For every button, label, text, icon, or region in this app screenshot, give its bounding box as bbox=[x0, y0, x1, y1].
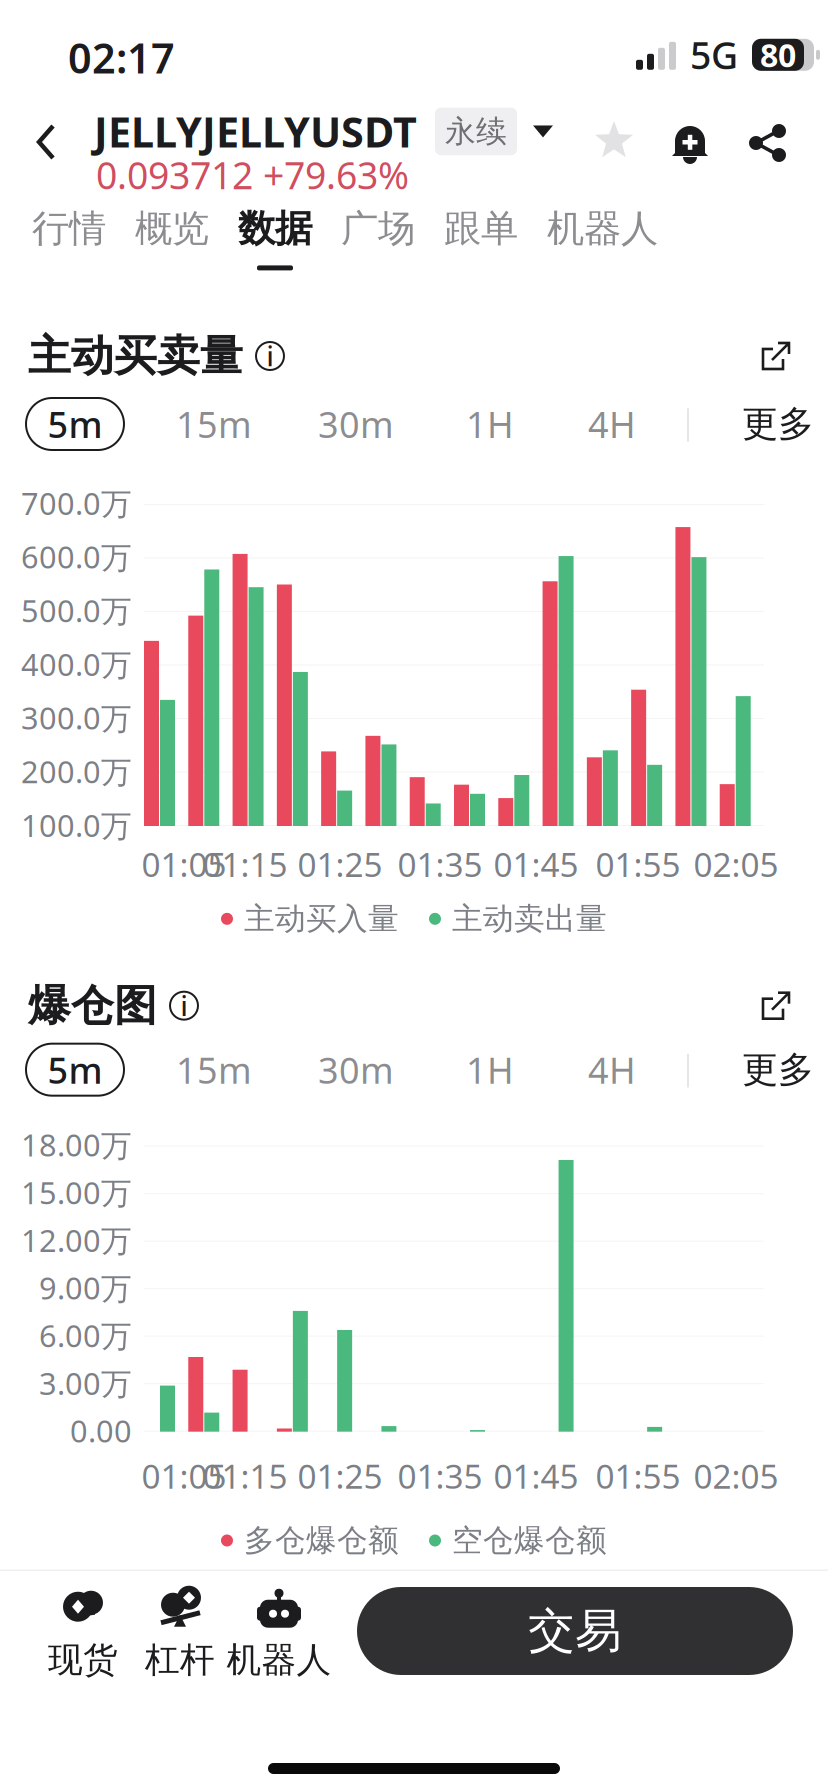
staticText: 1H bbox=[466, 400, 514, 448]
button[interactable]: 交易 bbox=[357, 1587, 793, 1675]
button[interactable]: 机器人 bbox=[547, 200, 658, 276]
staticText: 600.0万 bbox=[21, 536, 132, 577]
staticText: 02:05 bbox=[693, 842, 778, 886]
button[interactable]: 15m bbox=[176, 398, 252, 450]
staticText: 12.00万 bbox=[21, 1220, 132, 1260]
staticText: 02:05 bbox=[693, 1454, 778, 1498]
staticText: 更多 bbox=[742, 402, 814, 446]
staticText: 01:55 bbox=[595, 842, 680, 886]
staticText: 广场 bbox=[341, 206, 415, 251]
staticText: 01:45 bbox=[493, 842, 578, 886]
staticText: 1H bbox=[466, 1046, 514, 1094]
button[interactable]: 广场 bbox=[341, 200, 415, 276]
button[interactable]: Favorite bbox=[592, 120, 636, 164]
staticText: 500.0万 bbox=[21, 590, 132, 631]
staticText: 4H bbox=[588, 400, 636, 448]
button[interactable]: 更多 bbox=[742, 398, 814, 450]
button[interactable]: 1H bbox=[466, 398, 514, 450]
button[interactable]: 1H bbox=[466, 1044, 514, 1096]
staticText: 200.0万 bbox=[21, 751, 132, 792]
staticText: 交易 bbox=[528, 1602, 622, 1660]
staticText: 现货 bbox=[48, 1639, 118, 1681]
button[interactable]: 5m bbox=[26, 1044, 124, 1096]
staticText: 空仓爆仓额 bbox=[452, 1522, 607, 1559]
button[interactable]: 更多 bbox=[742, 1044, 814, 1096]
staticText: 15.00万 bbox=[21, 1172, 132, 1213]
button[interactable]: 行情 bbox=[32, 200, 106, 276]
button[interactable]: Price alert bbox=[668, 120, 714, 166]
button[interactable]: Expand chart bbox=[748, 332, 804, 380]
staticText: 机器人 bbox=[547, 206, 658, 251]
staticText: 30m bbox=[318, 400, 394, 448]
button[interactable]: 跟单 bbox=[444, 200, 518, 276]
staticText: 01:15 bbox=[202, 842, 287, 886]
staticText: 机器人 bbox=[226, 1639, 331, 1681]
staticText: 01:05 bbox=[141, 842, 226, 886]
staticText: 5m bbox=[47, 1046, 102, 1094]
staticText: 主动买卖量 bbox=[28, 330, 243, 382]
staticText: 02:17 bbox=[68, 30, 175, 85]
button[interactable]: 30m bbox=[318, 1044, 394, 1096]
staticText: 700.0万 bbox=[21, 483, 132, 523]
staticText: 数据 bbox=[238, 206, 312, 251]
staticText: 9.00万 bbox=[39, 1267, 132, 1308]
staticText: JELLYJELLYUSDT bbox=[94, 104, 417, 159]
button[interactable]: 概览 bbox=[135, 200, 209, 276]
button[interactable]: Share bbox=[744, 120, 790, 166]
staticText: 18.00万 bbox=[21, 1124, 132, 1165]
staticText: 行情 bbox=[32, 206, 106, 251]
staticText: 5G bbox=[690, 30, 738, 80]
staticText: 更多 bbox=[742, 1048, 814, 1092]
button[interactable]: 杠杆 bbox=[133, 1583, 227, 1683]
staticText: 0.093712 +79.63% bbox=[96, 150, 409, 200]
staticText: 01:25 bbox=[297, 842, 382, 886]
staticText: 01:25 bbox=[297, 1454, 382, 1498]
staticText: 6.00万 bbox=[39, 1315, 132, 1356]
button[interactable]: 现货 bbox=[36, 1583, 130, 1683]
button[interactable]: Back bbox=[16, 108, 78, 176]
button[interactable]: 5m bbox=[26, 398, 124, 450]
button[interactable]: 数据 bbox=[238, 200, 312, 276]
staticText: 0.00 bbox=[70, 1410, 132, 1451]
staticText: 15m bbox=[176, 400, 252, 448]
staticText: 主动买入量 bbox=[244, 900, 399, 938]
button[interactable]: 15m bbox=[176, 1044, 252, 1096]
staticText: 15m bbox=[176, 1046, 252, 1094]
staticText: 01:45 bbox=[493, 1454, 578, 1498]
staticText: 概览 bbox=[135, 206, 209, 251]
button[interactable]: 4H bbox=[588, 1044, 636, 1096]
button[interactable]: 机器人 bbox=[219, 1583, 339, 1683]
staticText: 爆仓图 bbox=[28, 979, 157, 1032]
staticText: 80 bbox=[760, 33, 796, 76]
staticText: 杠杆 bbox=[145, 1639, 215, 1681]
staticText: 跟单 bbox=[444, 206, 518, 251]
staticText: 4H bbox=[588, 1046, 636, 1094]
staticText: 30m bbox=[318, 1046, 394, 1094]
button[interactable]: 4H bbox=[588, 398, 636, 450]
staticText: 01:35 bbox=[397, 842, 482, 886]
staticText: i bbox=[266, 338, 273, 374]
staticText: 01:05 bbox=[141, 1454, 226, 1498]
staticText: 3.00万 bbox=[39, 1363, 132, 1403]
staticText: 100.0万 bbox=[21, 805, 132, 845]
staticText: 300.0万 bbox=[21, 697, 132, 738]
staticText: 永续 bbox=[445, 113, 507, 150]
staticText: i bbox=[180, 988, 187, 1023]
staticText: 多仓爆仓额 bbox=[244, 1522, 399, 1559]
staticText: 5m bbox=[47, 400, 102, 448]
staticText: 400.0万 bbox=[21, 644, 132, 684]
staticText: 主动卖出量 bbox=[452, 900, 607, 938]
staticText: 01:35 bbox=[397, 1454, 482, 1498]
button[interactable]: Expand chart bbox=[748, 982, 804, 1030]
staticText: 01:55 bbox=[595, 1454, 680, 1498]
staticText: 01:15 bbox=[202, 1454, 287, 1498]
button[interactable]: 30m bbox=[318, 398, 394, 450]
